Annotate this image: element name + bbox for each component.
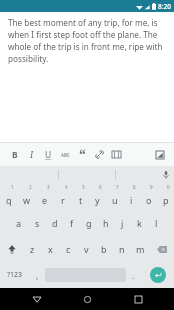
staticText: k — [137, 217, 142, 229]
staticText: 8:20 — [158, 2, 171, 11]
staticText: q — [6, 194, 12, 206]
button[interactable]: d — [46, 210, 63, 236]
button[interactable]: 9 — [140, 183, 157, 210]
staticText: e — [42, 194, 48, 206]
button[interactable]: a — [10, 210, 28, 236]
button[interactable]: 0 — [157, 183, 174, 210]
staticText: 5 — [82, 184, 85, 190]
button[interactable]: 8 — [123, 183, 140, 210]
button[interactable]: 7 — [106, 183, 123, 210]
staticText: x — [48, 243, 53, 255]
button[interactable]: Italic — [23, 143, 40, 166]
staticText: “ — [79, 145, 86, 164]
staticText: p — [163, 194, 169, 206]
button[interactable]: Back — [23, 288, 51, 310]
staticText: u — [112, 194, 118, 206]
staticText: n — [119, 243, 125, 255]
button[interactable]: , — [30, 262, 45, 288]
staticText: I — [30, 149, 34, 161]
staticText: a — [16, 217, 22, 229]
button[interactable]: More formatting — [108, 143, 125, 166]
staticText: 9 — [150, 184, 153, 190]
button[interactable]: 5 — [72, 183, 89, 210]
button[interactable]: Recent apps — [124, 288, 152, 310]
staticText: t — [79, 194, 83, 206]
button[interactable]: 6 — [89, 183, 106, 210]
staticText: c — [66, 243, 71, 255]
button[interactable]: m — [131, 236, 149, 262]
button[interactable]: b — [95, 236, 113, 262]
button[interactable]: Backspace — [149, 236, 174, 262]
button[interactable]: Home — [73, 288, 101, 310]
button[interactable]: z — [24, 236, 41, 262]
button[interactable]: Underline — [40, 143, 57, 166]
staticText: The best moment of any trip, for me, is … — [8, 17, 167, 64]
button[interactable]: v — [77, 236, 95, 262]
button[interactable]: 3 — [36, 183, 54, 210]
button[interactable]: n — [113, 236, 131, 262]
button[interactable]: ?123 — [0, 262, 30, 288]
button[interactable]: Link — [91, 143, 108, 166]
staticText: ?123 — [7, 270, 23, 280]
staticText: 0 — [167, 184, 170, 190]
button[interactable]: The best moment of any trip, for me, is … — [0, 12, 174, 142]
staticText: g — [86, 217, 92, 229]
button[interactable]: 2 — [18, 183, 36, 210]
button[interactable]: j — [114, 210, 131, 236]
button[interactable]: Strikethrough — [57, 143, 74, 166]
button[interactable]: 1 — [0, 183, 18, 210]
staticText: B — [12, 149, 18, 161]
staticText: ABC — [61, 152, 70, 158]
staticText: d — [52, 217, 58, 229]
button[interactable]: h — [97, 210, 114, 236]
staticText: i — [130, 194, 133, 206]
button[interactable]: Voice input — [157, 166, 174, 183]
staticText: 3 — [47, 184, 50, 190]
staticText: s — [35, 217, 40, 229]
button[interactable]: c — [59, 236, 77, 262]
staticText: m — [136, 243, 145, 255]
staticText: b — [101, 243, 107, 255]
button[interactable]: Quote — [74, 143, 91, 166]
button[interactable]: g — [80, 210, 97, 236]
staticText: w — [23, 194, 31, 206]
button[interactable]: Bold — [6, 143, 23, 166]
staticText: U — [45, 149, 52, 161]
button[interactable]: Shift — [0, 236, 24, 262]
staticText: 8 — [133, 184, 136, 190]
button[interactable]: Insert media — [150, 145, 170, 165]
staticText: 2 — [29, 184, 32, 190]
button[interactable]: Enter — [141, 262, 174, 288]
staticText: 7 — [116, 184, 119, 190]
button[interactable]: . — [126, 262, 141, 288]
button[interactable]: k — [131, 210, 148, 236]
staticText: 1 — [11, 184, 14, 190]
staticText: 6 — [99, 184, 102, 190]
staticText: . — [132, 270, 135, 281]
staticText: r — [61, 194, 65, 206]
button[interactable]: x — [41, 236, 59, 262]
staticText: v — [84, 243, 89, 255]
staticText: , — [36, 270, 39, 281]
button[interactable]: 4 — [54, 183, 72, 210]
staticText: j — [121, 217, 124, 229]
staticText: z — [30, 243, 35, 255]
button[interactable]: f — [63, 210, 80, 236]
staticText: y — [95, 194, 100, 206]
staticText: h — [103, 217, 109, 229]
staticText: l — [155, 217, 158, 229]
button[interactable]: s — [28, 210, 46, 236]
staticText: 4 — [65, 184, 68, 190]
staticText: o — [146, 194, 152, 206]
button[interactable]: l — [148, 210, 165, 236]
staticText: f — [70, 217, 74, 229]
